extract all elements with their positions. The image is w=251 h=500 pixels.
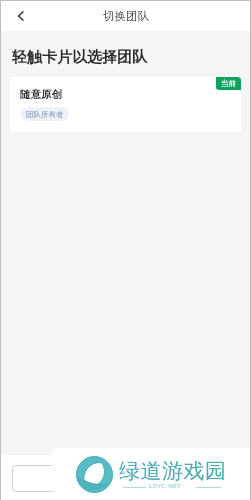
staticText: 切换团队 [103,9,149,23]
staticText: 随意原创 [20,88,62,101]
staticText: 轻触卡片以选择团队 [12,48,147,67]
staticText: 创建新团队 [101,472,151,485]
button[interactable]: 创建新团队 [12,465,239,492]
staticText: 当前 [221,79,236,88]
staticText: 绿道游戏园 [119,458,226,484]
button[interactable]: 随意原创 [10,77,241,132]
staticText: LDYC.NET [149,482,182,490]
staticText: 团队所有者 [26,110,64,119]
button[interactable]: 返回 [8,3,34,29]
